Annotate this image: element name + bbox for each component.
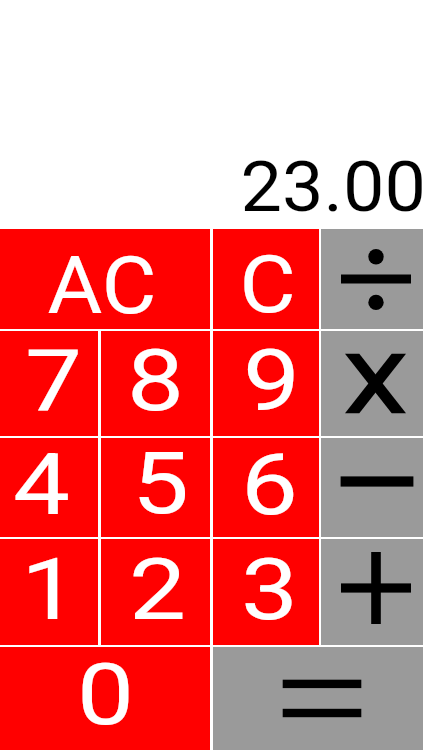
button[interactable]: 2 [101,539,210,645]
staticText: 5 [132,433,189,532]
staticText: C [239,238,296,332]
button[interactable]: Multiply [321,331,423,436]
staticText: 4 [13,434,70,533]
button[interactable]: 6 [213,438,319,537]
button[interactable]: C [213,229,319,329]
button[interactable]: 0 [0,647,210,750]
button[interactable]: 1 [0,539,98,645]
staticText: 23.00 [240,145,423,228]
staticText: 0 [77,644,134,745]
staticText: 1 [21,539,78,640]
button[interactable]: 4 [0,438,98,537]
button[interactable]: 8 [101,331,210,436]
staticText: AC [47,239,157,333]
staticText: 3 [241,539,298,640]
staticText: 9 [243,330,300,431]
button[interactable]: 5 [101,438,210,537]
button[interactable]: Add [321,539,423,645]
staticText: 7 [25,330,82,431]
button[interactable]: AC [0,229,210,329]
button[interactable]: 9 [213,331,319,436]
button[interactable]: 7 [0,331,98,436]
staticText: 8 [127,330,184,431]
button[interactable]: Equals [213,647,423,750]
staticText: 2 [129,539,186,640]
button[interactable]: Divide [321,229,423,329]
button[interactable]: 3 [213,539,319,645]
staticText: 6 [241,434,298,533]
button[interactable]: Subtract [321,438,423,537]
